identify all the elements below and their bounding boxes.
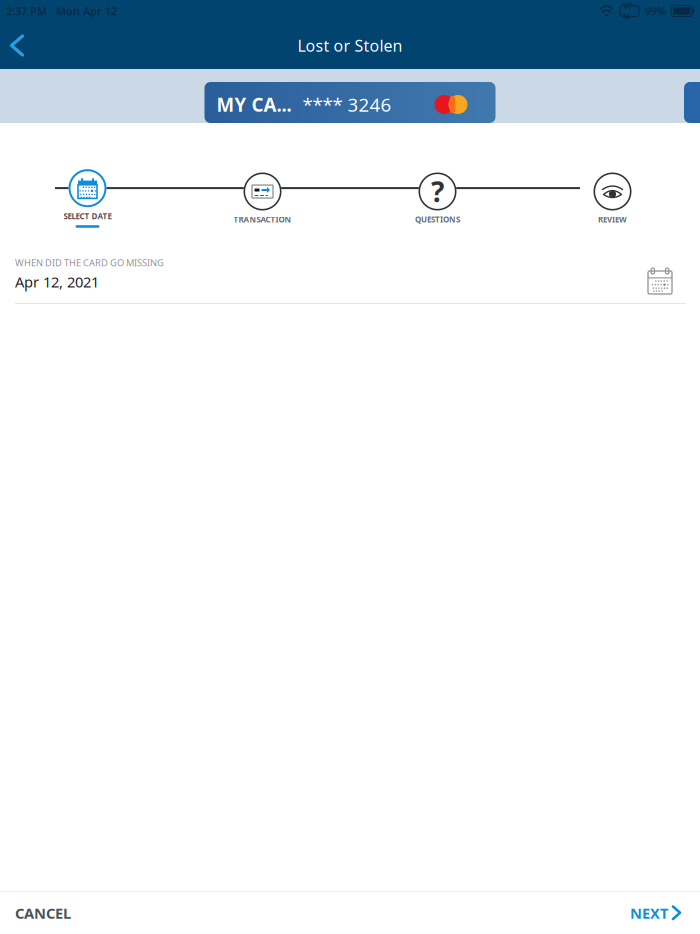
staticText: ?	[431, 173, 444, 210]
staticText: SELECT DATE	[63, 211, 111, 221]
button[interactable]: Back	[0, 23, 34, 67]
staticText: NEXT	[630, 903, 668, 923]
staticText: 99%	[645, 4, 666, 18]
button[interactable]: WHEN DID THE CARD GO MISSING	[0, 254, 700, 304]
staticText: **** 3246	[302, 92, 391, 117]
staticText: QUESTIONS	[415, 214, 460, 225]
staticText: 2:37 PM	[6, 4, 47, 18]
staticText: TRANSACTION	[233, 214, 291, 225]
staticText: VPN	[623, 0, 636, 22]
staticText: WHEN DID THE CARD GO MISSING	[15, 256, 164, 269]
staticText: Mon Apr 12	[56, 4, 117, 18]
staticText: REVIEW	[598, 214, 627, 225]
staticText: Apr 12, 2021	[15, 272, 99, 291]
button[interactable]: NEXT	[618, 892, 700, 934]
staticText: Lost or Stolen	[297, 35, 402, 56]
staticText: CANCEL	[15, 903, 71, 923]
button[interactable]: CANCEL	[0, 892, 83, 934]
staticText: MY CA...	[216, 92, 291, 117]
